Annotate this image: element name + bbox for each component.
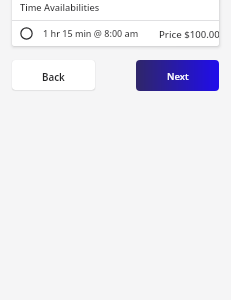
- staticText: Price $100.00: [159, 28, 219, 41]
- button[interactable]: Back: [12, 60, 95, 90]
- staticText: 1 hr 15 min @ 8:00 am: [43, 27, 139, 39]
- button[interactable]: Next: [136, 60, 219, 91]
- button[interactable]: Select time slot: [12, 21, 219, 46]
- staticText: Back: [42, 71, 65, 84]
- other: Select time slot: [20, 27, 33, 40]
- staticText: Time Availabilities: [20, 1, 100, 14]
- staticText: Next: [167, 70, 189, 83]
